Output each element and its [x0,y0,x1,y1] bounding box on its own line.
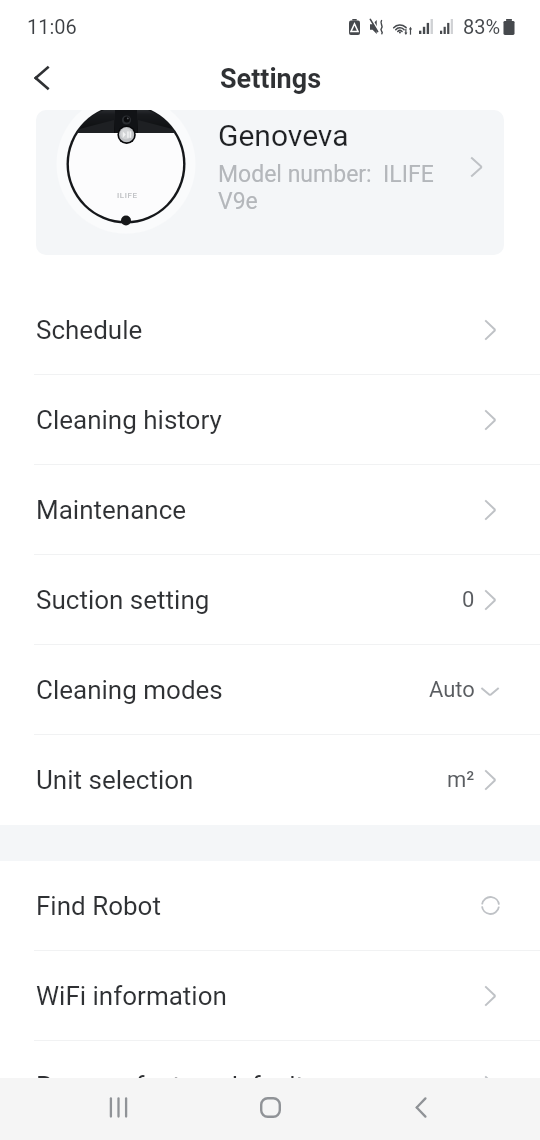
staticText: Cleaning history [36,405,222,435]
staticText: m² [447,767,475,793]
button[interactable]: Recover factory defaults [0,1041,540,1131]
button[interactable]: ILIFE [36,110,504,255]
button[interactable]: Home [246,1083,294,1131]
staticText: Cleaning modes [36,675,223,705]
button[interactable]: Back [20,56,64,100]
button[interactable]: Suction setting [0,555,540,645]
staticText: ILIFE [117,191,138,200]
button[interactable]: Unit selection [0,735,540,825]
button[interactable]: Schedule [0,285,540,375]
staticText: Genoveva [218,118,349,153]
staticText: Maintenance [36,495,187,525]
staticText: Settings [220,63,322,95]
button[interactable]: Cleaning history [0,375,540,465]
button[interactable]: Cleaning modes [0,645,540,735]
staticText: Auto [429,677,475,703]
button[interactable]: Maintenance [0,465,540,555]
staticText: 11:06 [27,15,77,38]
button[interactable]: Recent apps [94,1083,142,1131]
staticText: Schedule [36,315,143,345]
staticText: Model number: ILIFE V9e [218,161,446,214]
button[interactable]: WiFi information [0,951,540,1041]
staticText: Recover factory defaults [36,1071,318,1101]
staticText: WiFi information [36,981,227,1011]
button[interactable]: Back [396,1083,444,1131]
staticText: Unit selection [36,765,194,795]
staticText: 83% [463,15,501,38]
button[interactable]: Find Robot [0,861,540,951]
staticText: 0 [462,587,475,613]
staticText: Find Robot [36,891,161,921]
staticText: Suction setting [36,585,210,615]
